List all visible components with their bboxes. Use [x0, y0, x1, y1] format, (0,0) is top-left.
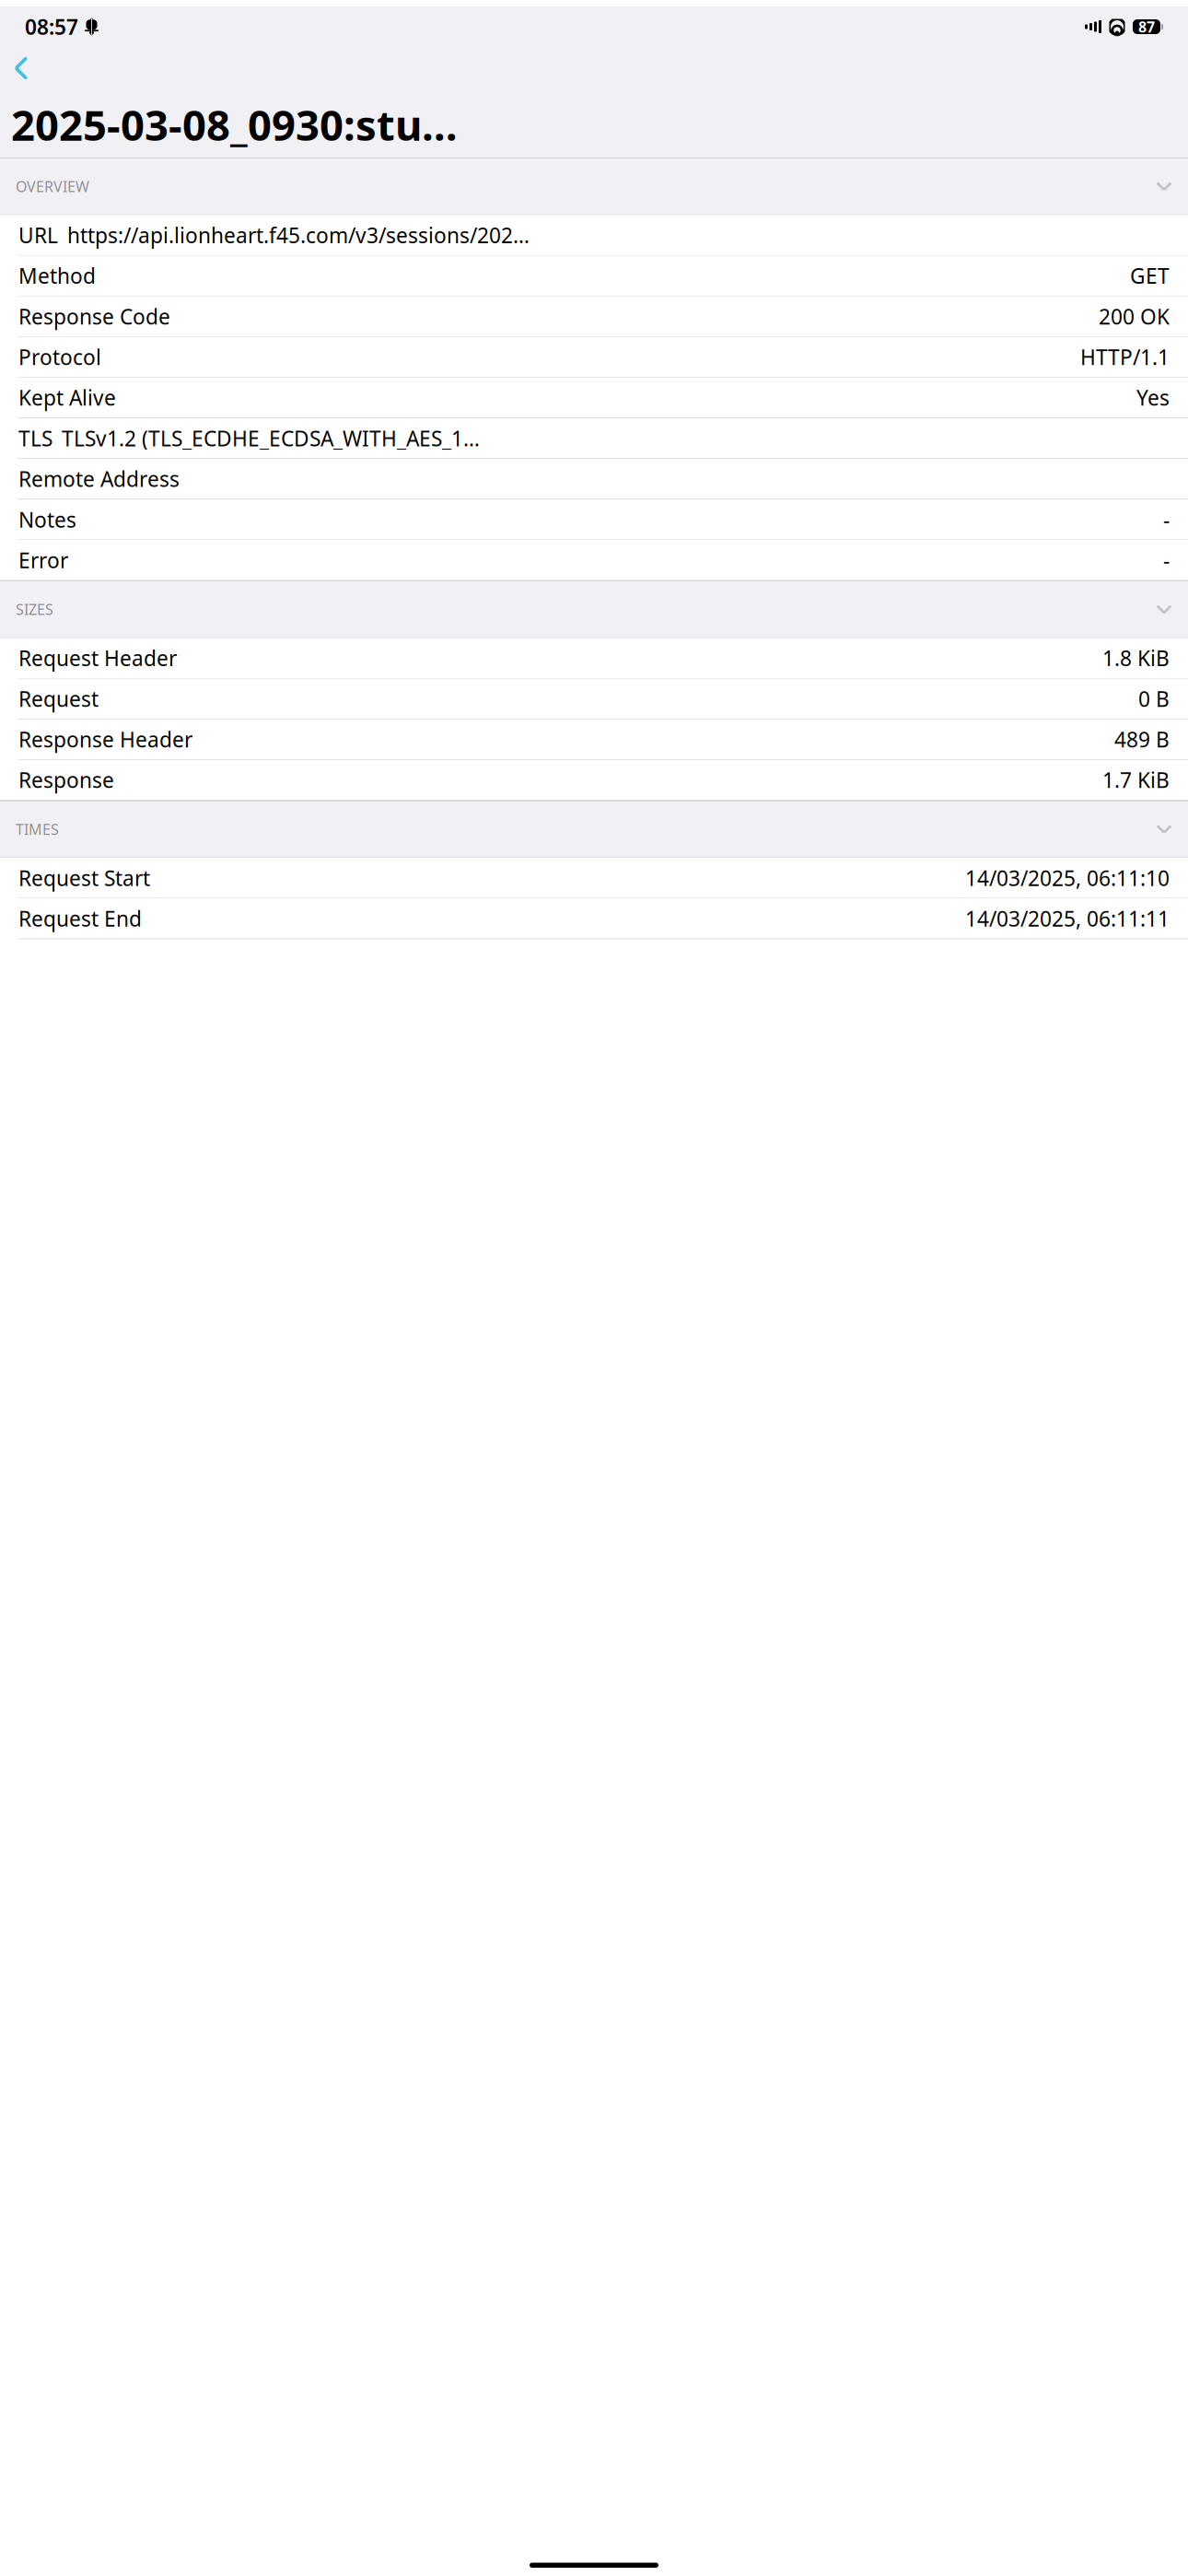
staticText: Notes: [18, 506, 76, 533]
staticText: TIMES: [16, 819, 59, 839]
button[interactable]: TIMES: [0, 801, 1188, 858]
staticText: Request End: [18, 905, 142, 932]
staticText: Kept Alive: [18, 384, 116, 411]
staticText: GET: [1130, 262, 1170, 290]
staticText: TLS: [18, 424, 52, 452]
button[interactable]: Remote Address: [0, 459, 1188, 499]
staticText: 08:57: [25, 13, 78, 41]
staticText: Response Header: [18, 725, 192, 753]
button[interactable]: Back: [4, 49, 39, 88]
staticText: -: [1163, 506, 1170, 533]
staticText: 14/03/2025, 06:11:10: [965, 864, 1170, 892]
button[interactable]: Request: [0, 679, 1188, 719]
staticText: HTTP/1.1: [1080, 343, 1170, 371]
button[interactable]: Protocol: [0, 337, 1188, 378]
staticText: Response Code: [18, 302, 170, 330]
staticText: https://api.lionheart.f45.com/v3/session…: [67, 221, 530, 249]
button[interactable]: Request Header: [0, 638, 1188, 679]
button[interactable]: Response Code: [0, 296, 1188, 337]
staticText: TLSv1.2 (TLS_ECDHE_ECDSA_WITH_AES_1…: [62, 424, 480, 452]
button[interactable]: OVERVIEW: [0, 158, 1188, 215]
button[interactable]: Request End: [0, 898, 1188, 939]
staticText: 1.7 KiB: [1102, 766, 1170, 794]
button[interactable]: Response Header: [0, 719, 1188, 760]
staticText: SIZES: [16, 600, 53, 619]
staticText: 14/03/2025, 06:11:11: [965, 905, 1170, 932]
staticText: 2025-03-08_0930:stu…: [11, 97, 458, 152]
staticText: Request Header: [18, 644, 177, 672]
staticText: Remote Address: [18, 465, 180, 493]
staticText: Request Start: [18, 864, 150, 892]
staticText: -: [1163, 546, 1170, 574]
button[interactable]: Kept Alive: [0, 378, 1188, 418]
staticText: Request: [18, 685, 99, 713]
button[interactable]: Error: [0, 540, 1188, 581]
staticText: 200 OK: [1099, 302, 1170, 330]
staticText: 0 B: [1138, 685, 1170, 713]
button[interactable]: Notes: [0, 499, 1188, 540]
button[interactable]: SIZES: [0, 581, 1188, 638]
button[interactable]: URL: [0, 215, 1188, 256]
staticText: Response: [18, 766, 114, 794]
staticText: 1.8 KiB: [1102, 644, 1170, 672]
staticText: Error: [18, 546, 68, 574]
staticText: Protocol: [18, 343, 101, 371]
staticText: Method: [18, 262, 96, 290]
staticText: Yes: [1136, 384, 1170, 411]
button[interactable]: Request Start: [0, 858, 1188, 898]
button[interactable]: TLS: [0, 418, 1188, 459]
staticText: 489 B: [1114, 725, 1170, 753]
staticText: 87: [1138, 17, 1155, 36]
staticText: URL: [18, 221, 58, 249]
button[interactable]: Method: [0, 256, 1188, 296]
staticText: OVERVIEW: [16, 177, 89, 196]
button[interactable]: Response: [0, 760, 1188, 801]
